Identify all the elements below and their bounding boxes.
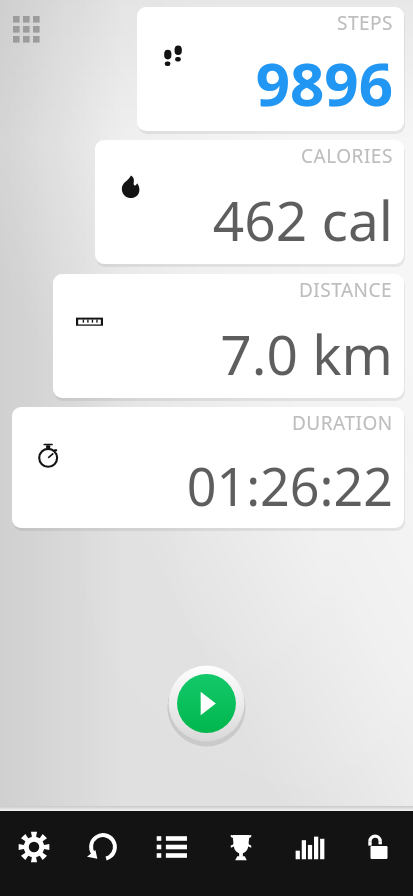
staticText: 7.0 km — [220, 316, 393, 391]
button[interactable]: Achievements — [206, 811, 275, 896]
staticText: 01:26:22 — [186, 450, 393, 521]
staticText: 9896 — [255, 42, 393, 124]
staticText: DURATION — [292, 410, 393, 436]
staticText: 462 cal — [212, 182, 393, 257]
staticText: STEPS — [337, 10, 393, 36]
button[interactable]: STEPS — [137, 7, 404, 131]
button[interactable]: Reset — [68, 811, 137, 896]
button[interactable]: CALORIES — [95, 140, 404, 264]
button[interactable]: DURATION — [12, 407, 404, 528]
staticText: DISTANCE — [299, 277, 393, 303]
button[interactable]: Start workout — [167, 664, 246, 743]
button[interactable]: Settings — [0, 811, 68, 896]
button[interactable]: DISTANCE — [53, 274, 404, 398]
button[interactable]: Lock — [344, 811, 413, 896]
button[interactable]: History — [137, 811, 206, 896]
button[interactable]: Statistics — [275, 811, 344, 896]
staticText: CALORIES — [301, 143, 393, 169]
button[interactable]: Menu — [8, 10, 54, 56]
